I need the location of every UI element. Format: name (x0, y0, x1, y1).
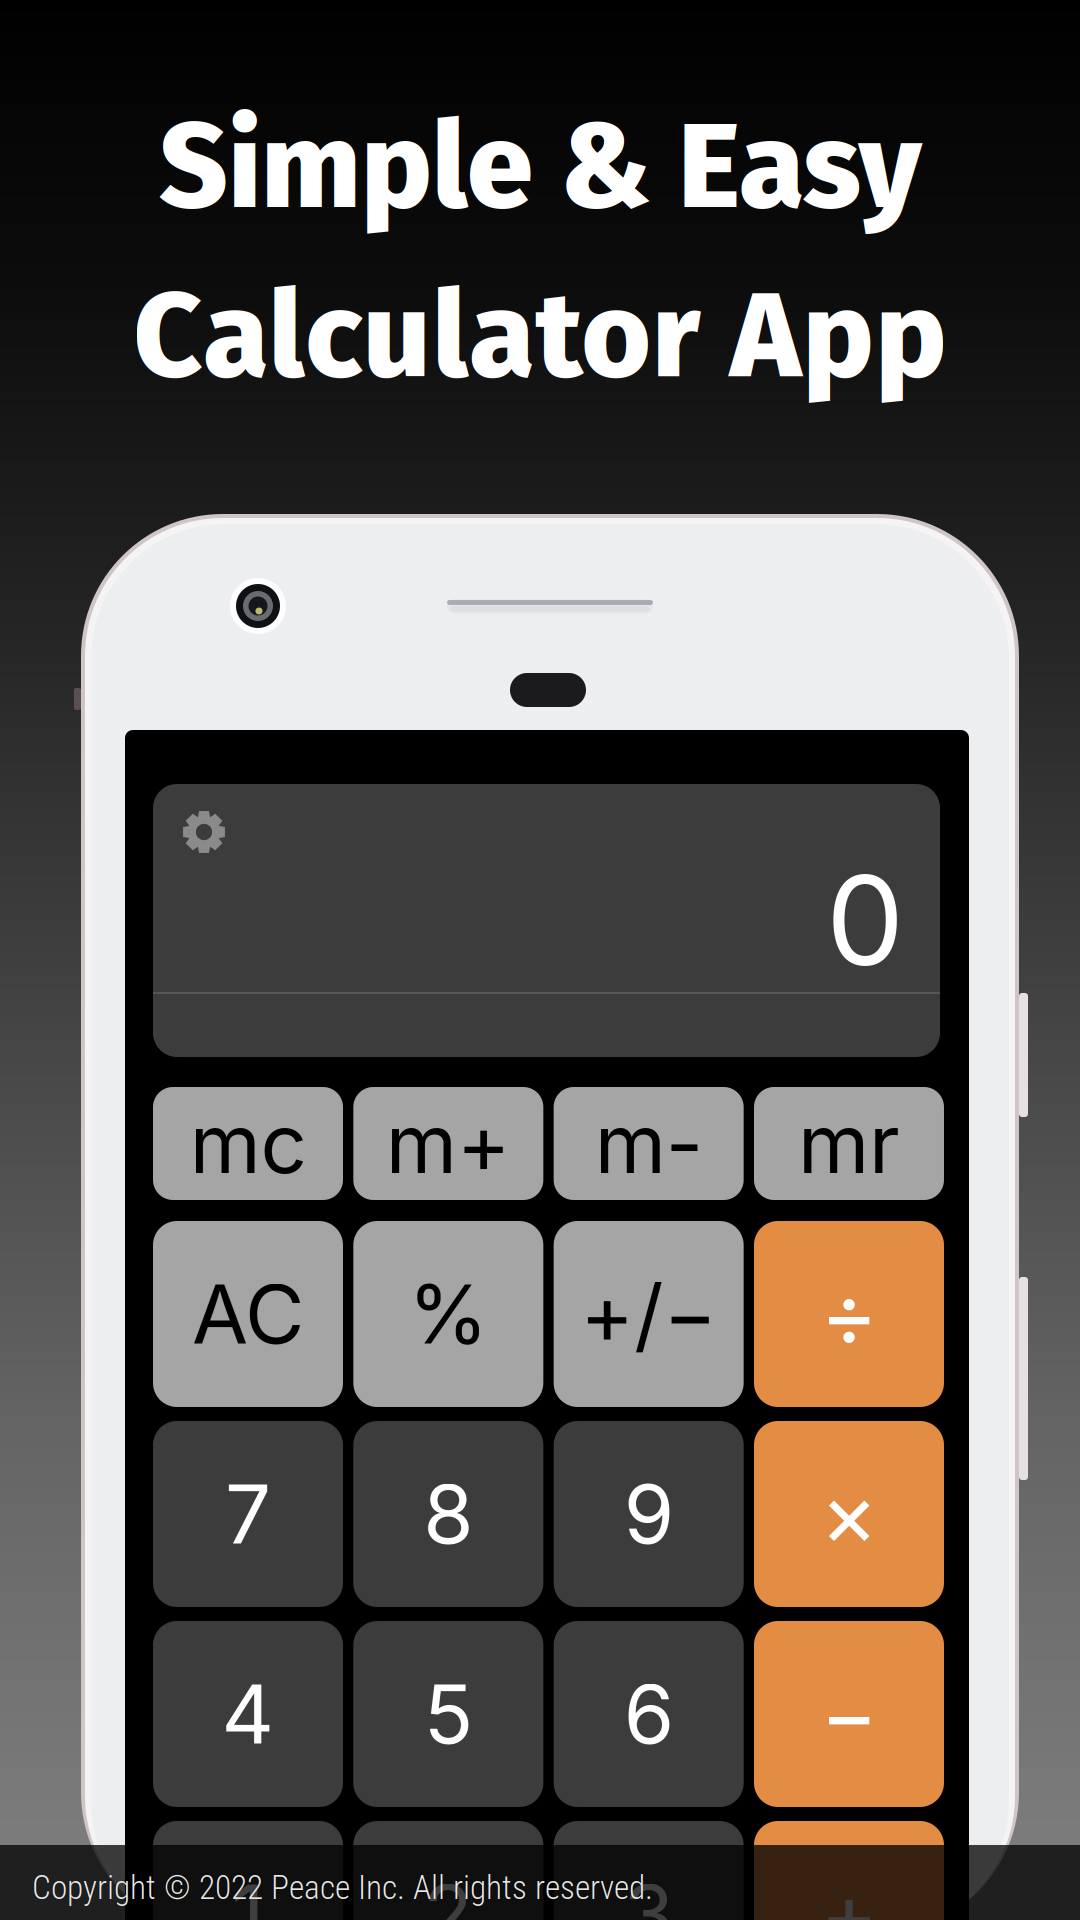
button[interactable]: +/− (554, 1221, 744, 1407)
staticText: 3 (624, 1865, 674, 1920)
staticText: 4 (221, 1665, 274, 1763)
button[interactable]: 8 (353, 1421, 543, 1607)
button[interactable]: 2 (353, 1821, 543, 1920)
staticText: − (820, 1661, 878, 1767)
staticText: m+ (386, 1094, 511, 1193)
button[interactable]: × (754, 1421, 944, 1607)
button[interactable]: 9 (554, 1421, 744, 1607)
staticText: 0 (826, 845, 904, 995)
button[interactable]: 6 (554, 1621, 744, 1807)
staticText: 9 (624, 1465, 674, 1563)
button[interactable]: 4 (153, 1621, 343, 1807)
button[interactable]: ÷ (754, 1221, 944, 1407)
staticText: 6 (624, 1665, 674, 1763)
staticText: 7 (225, 1465, 271, 1563)
button[interactable]: mc (153, 1087, 343, 1200)
button[interactable]: m+ (353, 1087, 543, 1200)
button[interactable]: % (353, 1221, 543, 1407)
staticText: + (820, 1861, 878, 1920)
button[interactable]: 5 (353, 1621, 543, 1807)
button[interactable]: − (754, 1621, 944, 1807)
button[interactable]: 7 (153, 1421, 343, 1607)
staticText: +/− (580, 1265, 717, 1363)
staticText: Simple & Easy (159, 96, 921, 238)
staticText: 2 (423, 1865, 473, 1920)
button[interactable]: 3 (554, 1821, 744, 1920)
staticText: 5 (424, 1665, 473, 1763)
staticText: Copyright © 2022 Peace Inc. All rights r… (32, 1868, 653, 1907)
button[interactable]: Settings (167, 795, 241, 869)
staticText: 1 (231, 1865, 264, 1920)
staticText: Calculator App (134, 265, 946, 408)
button[interactable]: m- (554, 1087, 744, 1200)
staticText: ÷ (820, 1261, 878, 1367)
button[interactable]: mr (754, 1087, 944, 1200)
staticText: AC (192, 1265, 304, 1363)
staticText: mc (189, 1094, 306, 1193)
staticText: mr (798, 1094, 900, 1193)
staticText: % (408, 1265, 488, 1363)
staticText: m- (595, 1094, 703, 1193)
button[interactable]: + (754, 1821, 944, 1920)
button[interactable]: AC (153, 1221, 343, 1407)
staticText: 8 (423, 1465, 473, 1563)
button[interactable]: 1 (153, 1821, 343, 1920)
staticText: × (820, 1461, 878, 1567)
